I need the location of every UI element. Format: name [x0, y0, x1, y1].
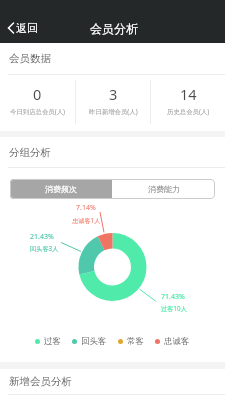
button[interactable]: 常客: [118, 336, 144, 347]
staticText: 14: [180, 84, 197, 104]
staticText: 回头客: [81, 336, 107, 347]
staticText: 忠诚客1人: [72, 216, 101, 224]
staticText: 返回: [16, 21, 38, 35]
button[interactable]: 消费能力: [112, 179, 215, 199]
button[interactable]: 消费频次: [10, 179, 112, 199]
button[interactable]: 返回: [5, 17, 41, 39]
staticText: 新增会员分析: [9, 375, 72, 388]
staticText: 过客10人: [161, 304, 187, 312]
staticText: 21.43%: [30, 232, 54, 242]
staticText: 忠诚客: [164, 336, 190, 347]
staticText: 0: [33, 84, 42, 104]
staticText: 7.14%: [76, 203, 96, 213]
button[interactable]: 忠诚客: [155, 336, 190, 347]
staticText: 分组分析: [9, 146, 51, 159]
staticText: 昨日新增会员(人): [89, 107, 138, 116]
staticText: 过客: [44, 336, 61, 347]
staticText: 消费能力: [148, 184, 180, 194]
staticText: 3: [109, 84, 118, 104]
staticText: 常客: [127, 336, 144, 347]
staticText: 71.43%: [161, 292, 185, 302]
button[interactable]: 过客: [35, 336, 61, 347]
staticText: 回头客3人: [30, 244, 59, 252]
staticText: 会员数据: [9, 52, 51, 65]
staticText: 消费频次: [45, 184, 77, 194]
button[interactable]: 回头客: [72, 336, 107, 347]
staticText: 会员分析: [90, 21, 138, 36]
staticText: 今日到店总会员(人): [10, 107, 65, 116]
staticText: 历史总会员(人): [167, 107, 210, 116]
